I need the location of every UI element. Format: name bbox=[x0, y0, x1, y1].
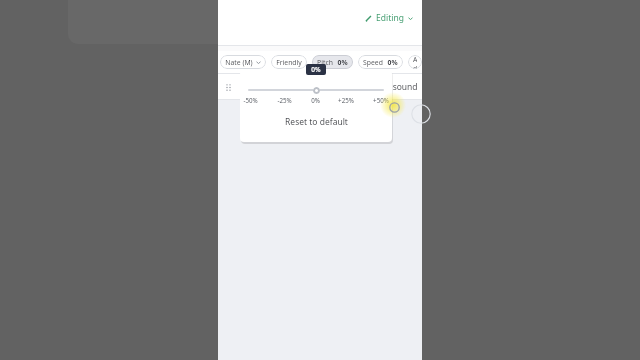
staticText: -25% bbox=[277, 96, 292, 104]
button[interactable]: Pitch slider thumb bbox=[313, 87, 320, 94]
staticText: +50% bbox=[373, 96, 389, 104]
staticText: 0% bbox=[387, 58, 398, 67]
staticText: be sound bbox=[380, 81, 418, 93]
button[interactable]: Add P bbox=[408, 55, 422, 69]
staticText: -50% bbox=[243, 96, 258, 104]
staticText: Add P bbox=[413, 55, 417, 69]
button[interactable]: Nate (M) bbox=[220, 55, 266, 69]
staticText: 0% bbox=[337, 58, 348, 67]
staticText: 0% bbox=[311, 65, 321, 74]
button[interactable]: Reset to default bbox=[240, 114, 392, 130]
staticText: Friendly bbox=[276, 58, 302, 67]
button[interactable]: Friendly bbox=[271, 55, 307, 69]
staticText: Speed bbox=[363, 58, 383, 67]
staticText: Reset to default bbox=[285, 116, 348, 128]
staticText: Editing bbox=[376, 12, 404, 24]
button[interactable]: Speed bbox=[358, 55, 403, 69]
staticText: Pitch bbox=[317, 58, 333, 67]
button[interactable]: Pitch bbox=[312, 55, 353, 69]
staticText: 0% bbox=[311, 96, 320, 104]
button[interactable]: Editing bbox=[362, 10, 416, 26]
staticText: +25% bbox=[338, 96, 354, 104]
staticText: Nate (M) bbox=[225, 58, 253, 67]
button[interactable]: Drag to reorder bbox=[223, 82, 233, 92]
